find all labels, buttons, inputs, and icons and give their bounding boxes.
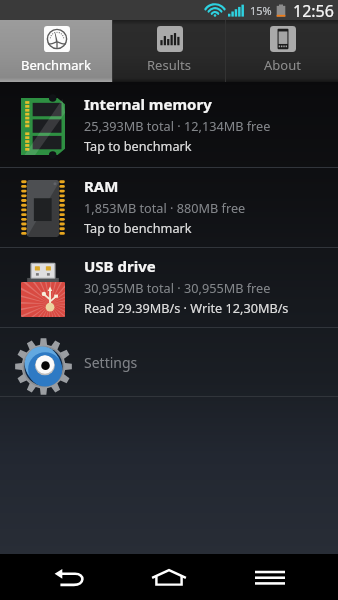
button[interactable]: RAM (0, 168, 338, 247)
staticText: 12:56 (293, 0, 334, 20)
staticText: USB drive (84, 256, 156, 276)
staticText: About (264, 56, 301, 74)
staticText: Tap to benchmark (84, 219, 192, 236)
button[interactable]: Internal memory (0, 85, 338, 167)
staticText: Settings (84, 353, 138, 372)
staticText: Benchmark (21, 56, 91, 74)
button[interactable]: Settings (0, 328, 338, 396)
staticText: RAM (84, 176, 119, 196)
button[interactable]: USB drive (0, 248, 338, 327)
button[interactable]: Results (113, 20, 225, 82)
staticText: 25,393MB total · 12,134MB free (84, 117, 271, 134)
staticText: Results (147, 56, 191, 74)
staticText: Tap to benchmark (84, 137, 192, 154)
button[interactable]: Back (0, 554, 125, 600)
button[interactable]: Home (125, 554, 213, 600)
button[interactable]: Recent apps (213, 554, 338, 600)
staticText: Internal memory (84, 94, 212, 114)
staticText: 1,853MB total · 880MB free (84, 199, 246, 216)
button[interactable]: About (226, 20, 338, 82)
button[interactable]: Benchmark (0, 20, 112, 82)
staticText: Read 29.39MB/s · Write 12,30MB/s (84, 299, 289, 316)
staticText: 15% (250, 3, 272, 18)
staticText: 30,955MB total · 30,955MB free (84, 279, 271, 296)
